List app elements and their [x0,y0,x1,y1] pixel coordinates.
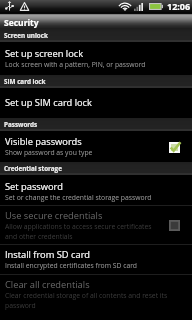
staticText: Credential storage [4,164,62,173]
staticText: Set password [5,180,63,193]
button[interactable]: Set up SIM card lock [0,96,192,109]
staticText: Install encrypted certificates from SD c… [5,261,138,270]
staticText: Show password as you type [5,148,93,157]
other: Visible passwords, on [169,142,180,153]
other: Use secure credentials, off [169,220,180,231]
button[interactable]: Clear all credentials [0,278,192,310]
button[interactable]: Use secure credentials [0,209,192,241]
staticText: Use secure credentials [5,209,103,222]
button[interactable]: Install from SD card [0,248,192,270]
staticText: Set up SIM card lock [5,96,92,109]
button[interactable]: Set password [0,180,192,202]
staticText: Lock screen with a pattern, PIN, or pass… [5,60,146,69]
staticText: Visible passwords [5,135,82,148]
staticText: Clear all credentials [5,278,90,291]
staticText: Clear credential storage of all contents… [5,291,168,310]
staticText: Install from SD card [5,248,90,261]
button[interactable]: Visible passwords [0,135,192,157]
staticText: Passwords [4,120,38,129]
staticText: Set up screen lock [5,47,84,60]
staticText: Allow applications to access secure cert… [5,222,152,241]
staticText: Set or change the credential storage pas… [5,193,152,202]
staticText: Screen unlock [4,31,48,40]
staticText: SIM card lock [4,77,46,86]
staticText: Security [4,17,39,29]
button[interactable]: Set up screen lock [0,47,192,69]
staticText: 12:06 [167,0,191,12]
